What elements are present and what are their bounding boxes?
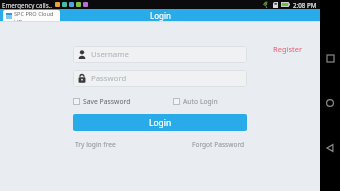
button[interactable]: Password [73,70,247,87]
button[interactable]: Username [73,46,247,63]
button[interactable]: Auto Login [173,96,218,107]
staticText: Username [91,49,129,60]
button[interactable]: Back [320,138,340,158]
button[interactable]: Recent apps [320,48,340,68]
staticText: Register [273,44,303,54]
staticText: 2:08 PM [293,1,317,9]
staticText: Login [149,117,172,129]
staticText: Save Password [83,97,131,106]
staticText: Password [91,73,127,84]
staticText: Emergency calls.. [2,1,52,9]
staticText: Try login free [75,140,116,149]
button[interactable]: Forgot Password [190,138,247,151]
button[interactable]: SPC PRO Cloud HD [3,10,60,21]
button[interactable]: Register [270,42,306,56]
button[interactable]: Home [320,93,340,113]
staticText: Forgot Password [192,140,245,149]
staticText: Login [150,10,171,21]
button[interactable]: Try login free [73,138,118,151]
button[interactable]: Save Password [73,96,131,107]
button[interactable]: Login [73,114,247,131]
staticText: Auto Login [183,97,218,106]
staticText: SPC PRO Cloud HD [14,10,57,21]
